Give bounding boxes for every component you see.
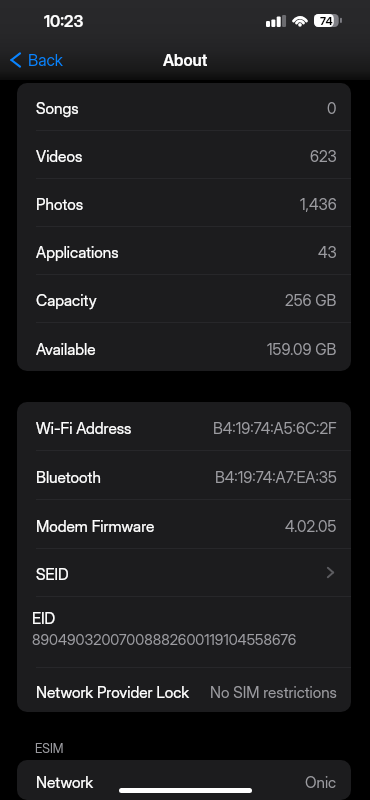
staticText: Modem Firmware <box>36 517 155 536</box>
button[interactable]: Photos <box>17 179 351 227</box>
staticText: 4.02.05 <box>285 517 337 536</box>
staticText: EID <box>32 609 56 628</box>
staticText: Capacity <box>36 291 97 310</box>
button[interactable]: EID <box>17 597 351 668</box>
other: Open SEID <box>327 567 334 578</box>
staticText: Available <box>36 340 96 359</box>
staticText: Wi-Fi Address <box>36 419 132 438</box>
staticText: ESIM <box>35 741 64 756</box>
button[interactable]: Videos <box>17 131 351 179</box>
staticText: Photos <box>36 195 83 214</box>
staticText: Bluetooth <box>36 468 101 487</box>
staticText: Applications <box>36 243 119 262</box>
button[interactable]: Network <box>17 760 351 800</box>
staticText: 159.09 GB <box>267 340 337 359</box>
staticText: B4:19:74:A5:6C:2F <box>213 419 337 438</box>
button[interactable]: Network Provider Lock <box>17 668 351 712</box>
button[interactable]: Wi-Fi Address <box>17 402 351 451</box>
button[interactable]: Songs <box>17 83 351 131</box>
button[interactable]: Back <box>10 50 63 69</box>
button[interactable]: Capacity <box>17 275 351 323</box>
staticText: 256 GB <box>285 291 337 310</box>
staticText: No SIM restrictions <box>210 683 337 702</box>
staticText: Songs <box>36 99 79 118</box>
staticText: 623 <box>310 147 337 166</box>
staticText: 0 <box>327 99 337 118</box>
button[interactable]: Modem Firmware <box>17 500 351 549</box>
staticText: Network <box>36 773 94 792</box>
staticText: 10:23 <box>44 11 84 30</box>
staticText: Onic <box>305 773 337 792</box>
staticText: Back <box>28 50 63 69</box>
button[interactable]: Bluetooth <box>17 451 351 500</box>
staticText: Network Provider Lock <box>36 683 190 702</box>
staticText: 43 <box>318 243 337 262</box>
staticText: SEID <box>36 565 69 584</box>
button[interactable]: SEID <box>17 549 351 597</box>
staticText: 74 <box>320 14 333 27</box>
button[interactable]: Applications <box>17 227 351 275</box>
staticText: 89049032007008882600119104558676 <box>32 631 297 649</box>
staticText: B4:19:74:A7:EA:35 <box>215 468 337 487</box>
staticText: About <box>163 50 208 69</box>
staticText: 1,436 <box>300 195 337 214</box>
staticText: Videos <box>36 147 83 166</box>
button[interactable]: Available <box>17 323 351 371</box>
